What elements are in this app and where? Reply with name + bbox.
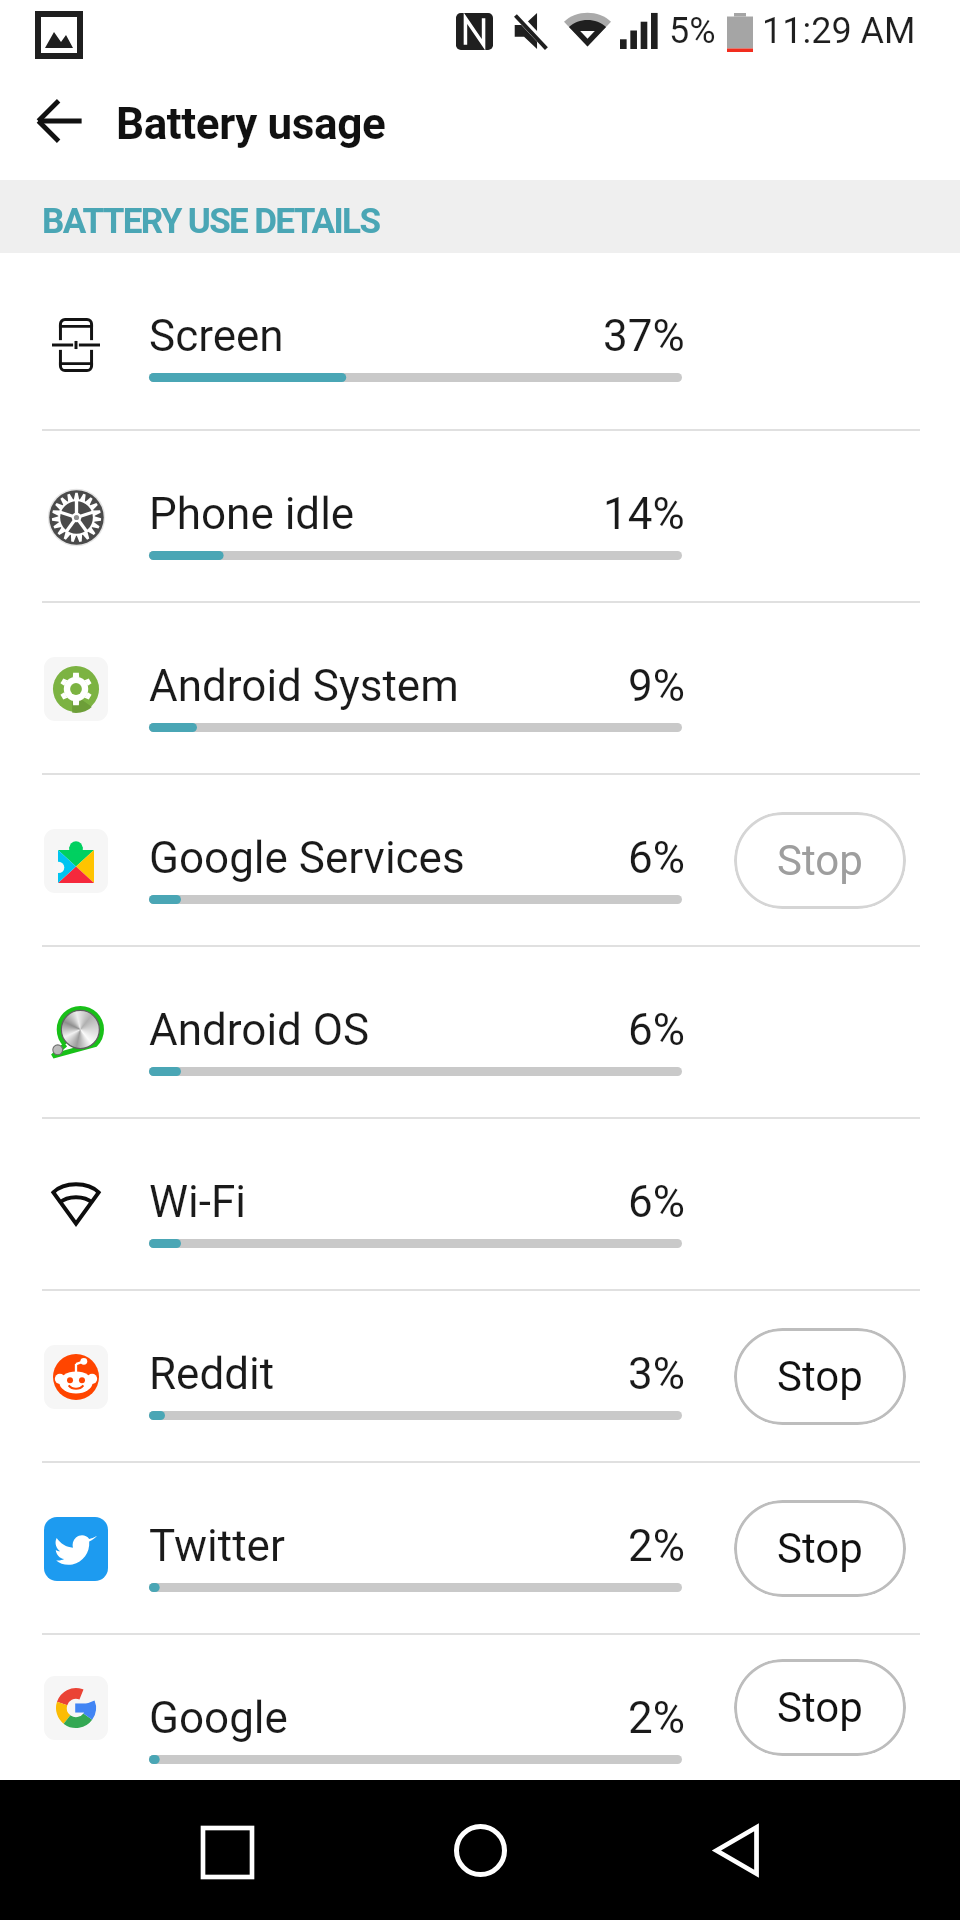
button[interactable]: Back [684, 1780, 784, 1920]
staticText: 2% [628, 1692, 685, 1744]
staticText: Android OS [149, 1004, 370, 1056]
staticText: 6% [628, 1004, 685, 1056]
staticText: 37% [603, 310, 685, 362]
staticText: Stop [777, 1524, 863, 1573]
staticText: Twitter [149, 1520, 285, 1572]
staticText: BATTERY USE DETAILS [42, 201, 380, 242]
button[interactable]: Stop [734, 1500, 906, 1597]
staticText: 14% [603, 488, 685, 540]
staticText: 6% [628, 1176, 685, 1228]
staticText: Android System [149, 660, 459, 712]
staticText: Wi-Fi [149, 1176, 246, 1228]
staticText: 9% [628, 660, 685, 712]
staticText: Phone idle [149, 488, 355, 540]
button[interactable]: Screen [0, 253, 960, 429]
staticText: Stop [777, 836, 863, 885]
staticText: Google Services [149, 832, 465, 884]
staticText: 6% [628, 832, 685, 884]
button[interactable]: Stop [734, 1659, 906, 1756]
button[interactable]: Phone idle [0, 431, 960, 601]
staticText: 3% [628, 1348, 685, 1400]
button[interactable]: Android OS [0, 947, 960, 1117]
button[interactable]: Reddit [0, 1291, 960, 1461]
staticText: 5% [669, 10, 716, 52]
button[interactable]: Google [0, 1635, 960, 1780]
button[interactable]: Android System [0, 603, 960, 773]
button[interactable]: Wi-Fi [0, 1119, 960, 1289]
staticText: Reddit [149, 1348, 275, 1400]
staticText: Battery usage [116, 98, 386, 150]
button[interactable]: Twitter [0, 1463, 960, 1633]
button[interactable]: Google Services [0, 775, 960, 945]
staticText: Stop [777, 1352, 863, 1401]
button[interactable]: Stop [734, 1328, 906, 1425]
staticText: 11:29 AM [762, 10, 916, 52]
staticText: Screen [149, 310, 284, 362]
button[interactable]: Stop [734, 812, 906, 909]
button[interactable]: Home [430, 1780, 530, 1920]
button[interactable]: Recent apps [176, 1780, 276, 1920]
staticText: 2% [628, 1520, 685, 1572]
staticText: Stop [777, 1683, 863, 1732]
button[interactable]: Back [22, 83, 98, 159]
staticText: Google [149, 1692, 288, 1744]
